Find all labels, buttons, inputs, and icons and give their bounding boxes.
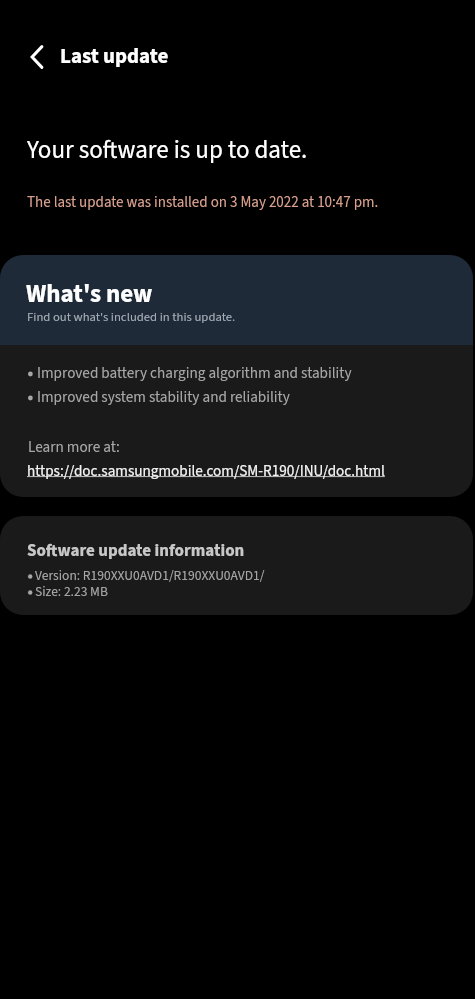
button[interactable]: https://doc.samsungmobile.com/SM-R190/IN… [27, 460, 385, 482]
staticText: Find out what's included in this update. [27, 308, 236, 326]
staticText: Learn more at: [28, 436, 120, 458]
staticText: Last update [60, 41, 169, 71]
staticText: The last update was installed on 3 May 2… [27, 192, 379, 213]
staticText: Your software is up to date. [27, 132, 308, 168]
staticText: Size: 2.23 MB [35, 582, 108, 601]
staticText: Improved system stability and reliabilit… [37, 386, 290, 408]
staticText: Software update information [27, 539, 245, 563]
button[interactable]: Back [9, 29, 65, 85]
staticText: Improved battery charging algorithm and … [37, 362, 352, 384]
staticText: Version: R190XXU0AVD1/R190XXU0AVD1/ [35, 566, 265, 585]
staticText: What's new [26, 276, 153, 312]
